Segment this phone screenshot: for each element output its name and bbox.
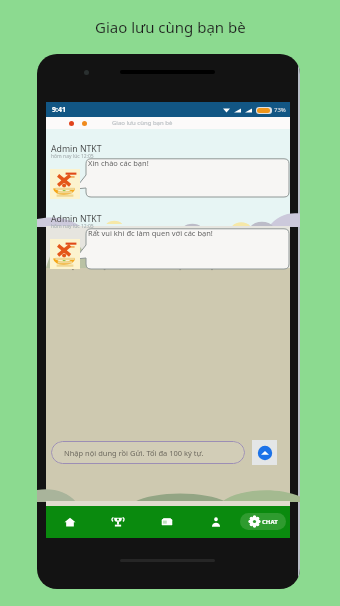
- staticText: Giao lưu cùng bạn bè: [112, 119, 173, 127]
- staticText: 9:41: [52, 105, 66, 115]
- staticText: hôm nay lúc 12:05: [51, 223, 94, 230]
- button[interactable]: Cards: [142, 506, 191, 538]
- button[interactable]: Send message: [252, 440, 277, 465]
- staticText: Admin NTKT: [51, 143, 102, 155]
- button[interactable]: Ranking: [94, 506, 142, 538]
- button[interactable]: CHAT: [240, 513, 286, 530]
- button[interactable]: Nhập nội dung rồi Gửi. Tối đa 100 ký tự.: [51, 441, 245, 464]
- staticText: Admin NTKT: [51, 213, 102, 225]
- button[interactable]: Home: [46, 506, 94, 538]
- staticText: Xin chào các bạn!: [88, 158, 149, 168]
- staticText: hôm nay lúc 12:05: [51, 153, 94, 160]
- staticText: Rất vui khi đc làm quen với các bạn!: [88, 228, 213, 238]
- button[interactable]: Profile: [191, 506, 240, 538]
- staticText: CHAT: [262, 518, 278, 526]
- staticText: 73%: [274, 106, 286, 114]
- staticText: Giao lưu cùng bạn bè: [95, 17, 246, 37]
- staticText: Nhập nội dung rồi Gửi. Tối đa 100 ký tự.: [64, 448, 204, 458]
